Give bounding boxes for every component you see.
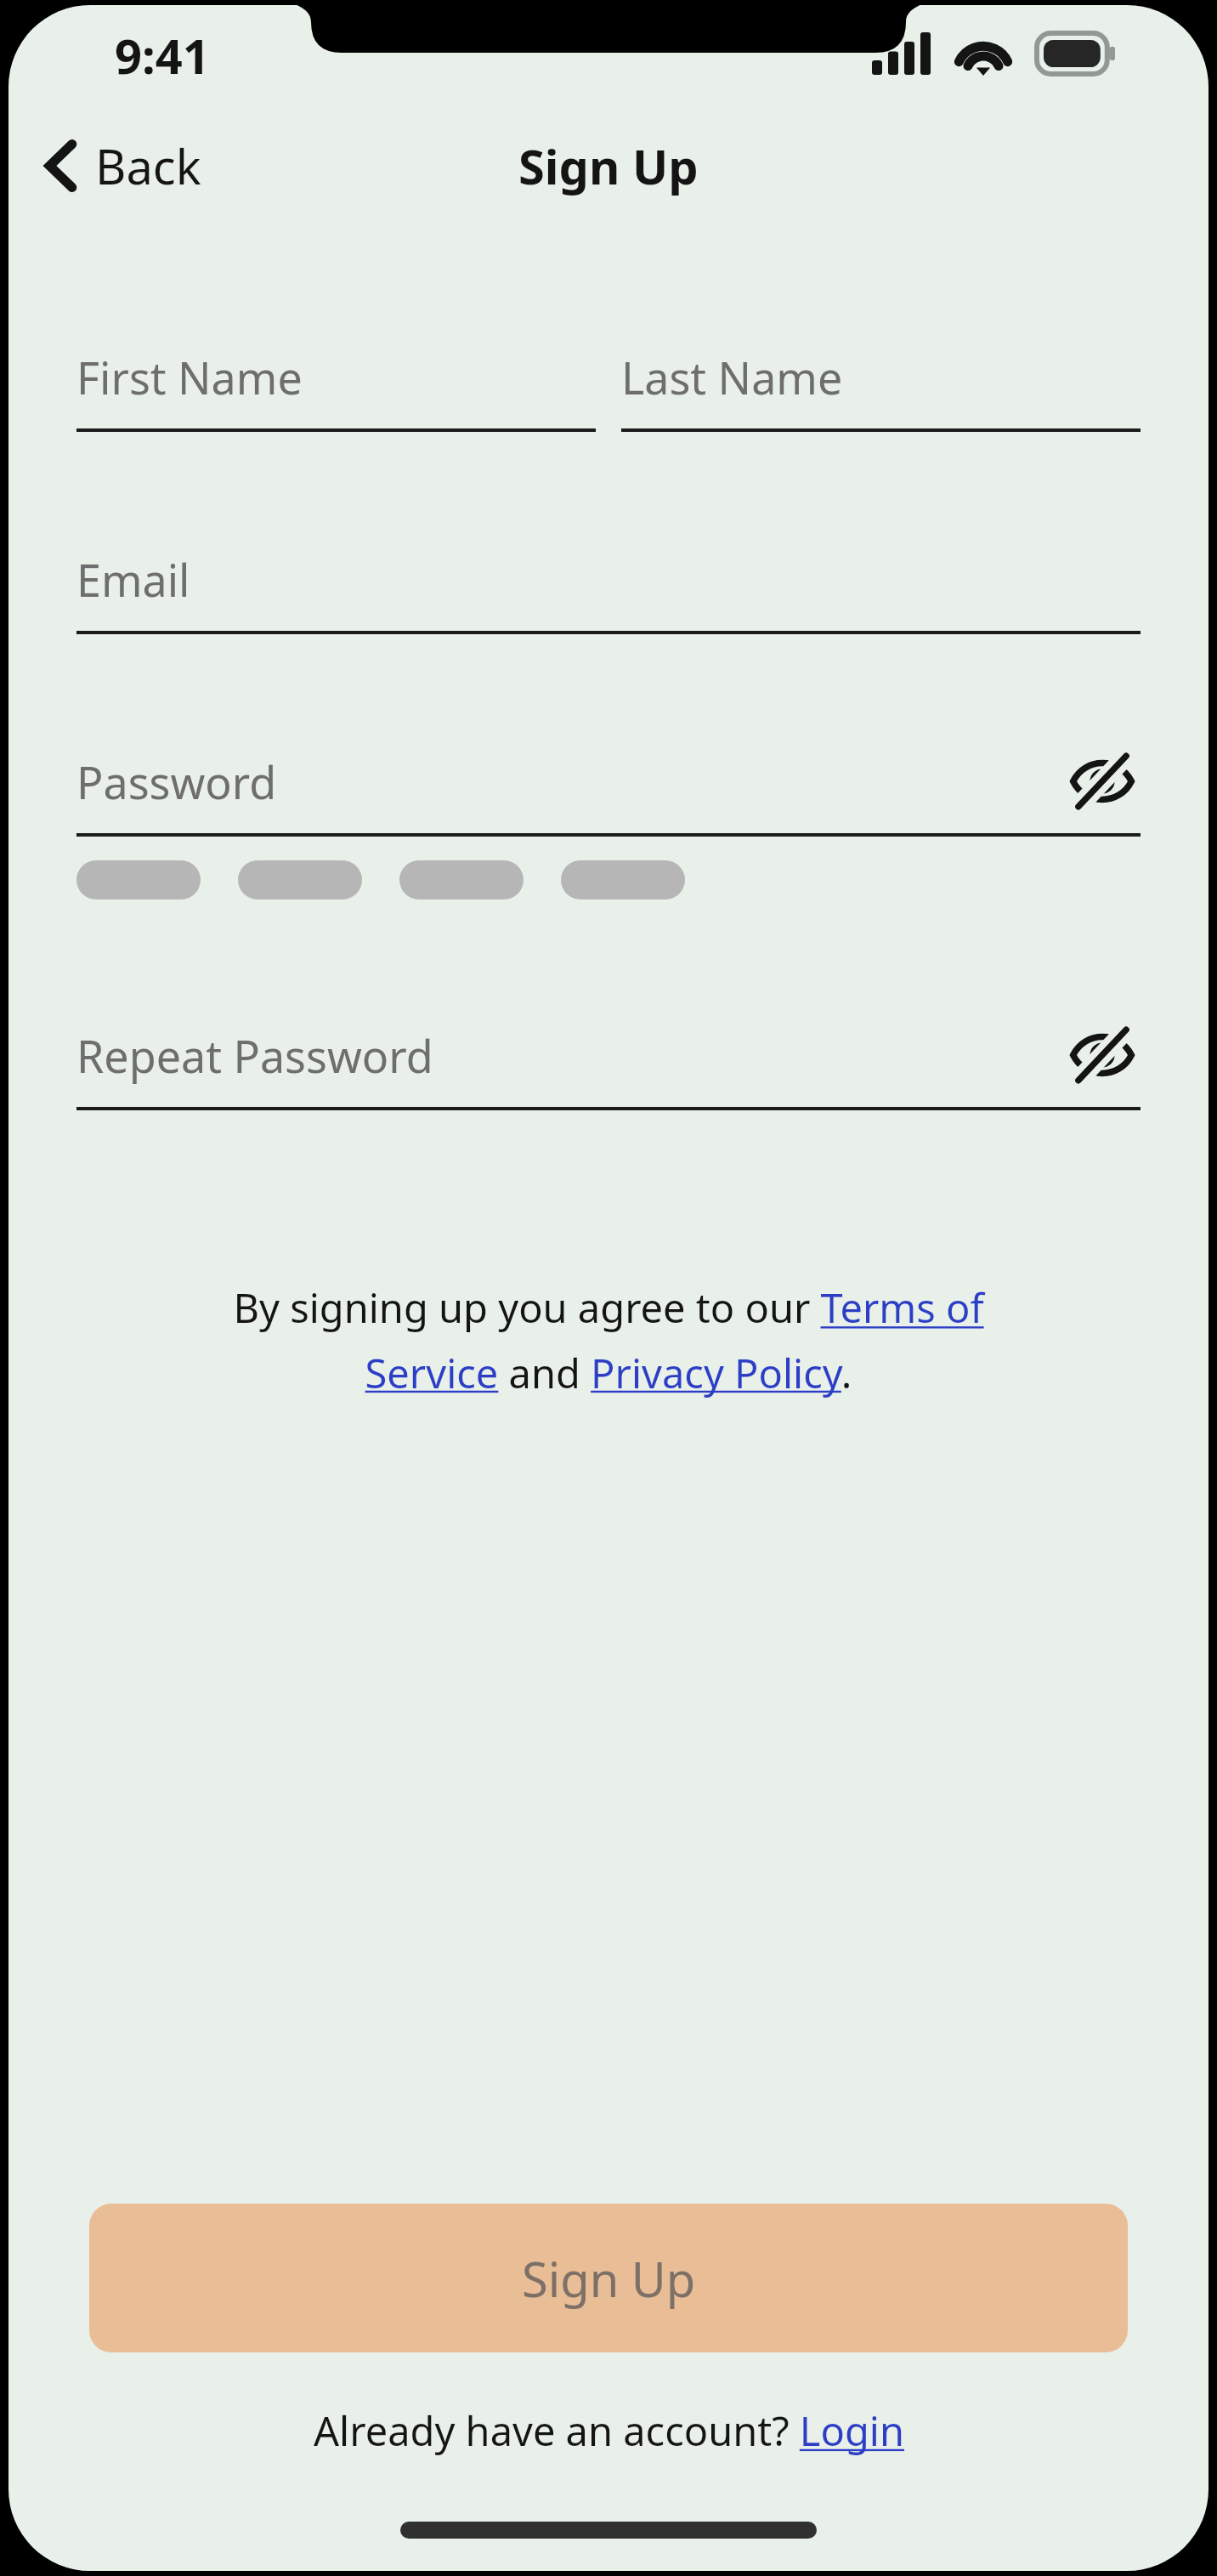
button[interactable]: Sign Up [89,2204,1128,2352]
button[interactable]: Show repeat password [1064,1018,1141,1092]
button[interactable]: Repeat Password [76,1018,1141,1110]
button[interactable]: Email [76,542,1141,634]
staticText: Last Name [621,347,1141,407]
staticText: Already have an account? Login [314,2403,904,2458]
button[interactable]: Password [76,745,1141,837]
staticText: Sign Up [522,2246,696,2311]
staticText: Password [76,752,1064,812]
staticText: 9:41 [115,23,210,88]
button[interactable]: First Name [76,340,596,432]
button[interactable]: Already have an account? Login [8,2403,1209,2458]
button[interactable]: Last Name [621,340,1141,432]
button[interactable]: By signing up you agree to our Terms of … [212,1280,1005,1399]
staticText: Email [76,549,1141,610]
staticText: Back [95,133,201,198]
staticText: By signing up you agree to our Terms of … [212,1280,1005,1399]
staticText: First Name [76,347,596,407]
button[interactable]: Back [34,125,212,207]
staticText: Repeat Password [76,1025,1064,1086]
button[interactable]: Show password [1064,745,1141,818]
staticText: Sign Up [518,133,699,198]
